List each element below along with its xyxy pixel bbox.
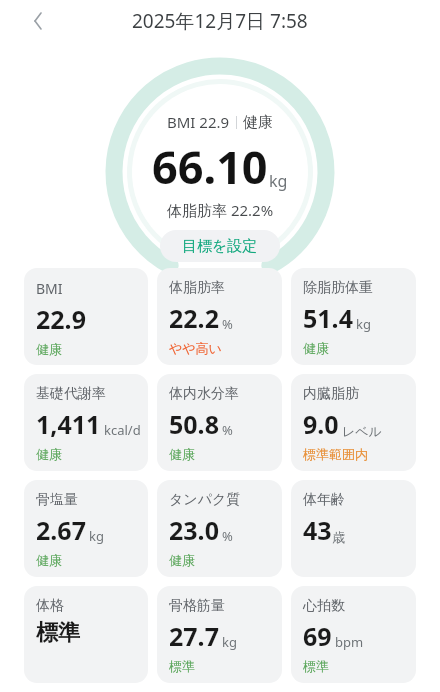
button[interactable]: 骨格筋量 [157, 586, 282, 683]
staticText: 体脂肪率 22.2% [167, 200, 274, 220]
staticText: 体内水分率 [169, 385, 239, 403]
staticText: 健康 [36, 446, 62, 462]
staticText: 除脂肪体重 [303, 279, 373, 297]
staticText: 内臓脂肪 [303, 385, 359, 403]
button[interactable]: BMI [24, 268, 148, 365]
staticText: 体年齢 [303, 491, 345, 509]
button[interactable]: 体格 [24, 586, 148, 683]
button[interactable]: 内臓脂肪 [291, 374, 416, 471]
staticText: kcal/d [104, 421, 141, 439]
button[interactable]: 体年齢 [291, 480, 416, 577]
button[interactable]: 基礎代謝率 [24, 374, 148, 471]
button[interactable]: 目標を設定 [160, 230, 280, 262]
staticText: 健康 [243, 113, 273, 132]
staticText: 基礎代謝率 [36, 385, 106, 403]
staticText: 22.9 [36, 302, 86, 336]
staticText: 健康 [169, 552, 195, 568]
staticText: bpm [335, 633, 364, 651]
staticText: kg [269, 170, 288, 192]
staticText: 骨格筋量 [169, 597, 225, 615]
staticText: 歳 [332, 529, 345, 545]
staticText: kg [89, 527, 104, 545]
staticText: 標準範囲内 [303, 446, 368, 462]
staticText: 骨塩量 [36, 491, 78, 509]
staticText: % [222, 527, 233, 545]
staticText: 体脂肪率 [169, 279, 225, 297]
button[interactable]: タンパク質 [157, 480, 282, 577]
button[interactable]: 骨塩量 [24, 480, 148, 577]
button[interactable]: 心拍数 [291, 586, 416, 683]
button[interactable]: 体脂肪率 [157, 268, 282, 365]
staticText: やや高い [169, 340, 222, 356]
staticText: 目標を設定 [182, 237, 258, 255]
staticText: BMI [36, 279, 63, 298]
button[interactable]: Back [20, 3, 56, 39]
staticText: 27.7 [169, 619, 219, 653]
staticText: 23.0 [169, 513, 219, 547]
staticText: % [222, 315, 233, 333]
button[interactable]: 体内水分率 [157, 374, 282, 471]
staticText: % [222, 421, 233, 439]
staticText: タンパク質 [169, 491, 241, 509]
staticText: 標準 [169, 658, 195, 674]
staticText: 心拍数 [303, 597, 345, 615]
staticText: kg [356, 315, 371, 333]
staticText: 標準 [36, 619, 80, 647]
staticText: 2025年12月7日 7:58 [132, 8, 308, 34]
staticText: 1,411 [36, 407, 101, 441]
staticText: 健康 [303, 340, 329, 356]
staticText: 健康 [36, 341, 62, 357]
staticText: kg [222, 633, 237, 651]
staticText: 51.4 [303, 301, 353, 335]
staticText: 体格 [36, 597, 64, 615]
staticText: 43 [303, 513, 332, 547]
staticText: 66.10 [152, 136, 268, 197]
staticText: 健康 [169, 446, 195, 462]
staticText: 健康 [36, 552, 62, 568]
staticText: BMI 22.9 [167, 112, 230, 132]
staticText: 2.67 [36, 513, 86, 547]
staticText: 50.8 [169, 407, 219, 441]
staticText: 標準 [303, 658, 329, 674]
staticText: 9.0 [303, 407, 339, 441]
staticText: 22.2 [169, 301, 219, 335]
staticText: 69 [303, 619, 332, 653]
button[interactable]: 除脂肪体重 [291, 268, 416, 365]
staticText: レベル [342, 423, 382, 439]
